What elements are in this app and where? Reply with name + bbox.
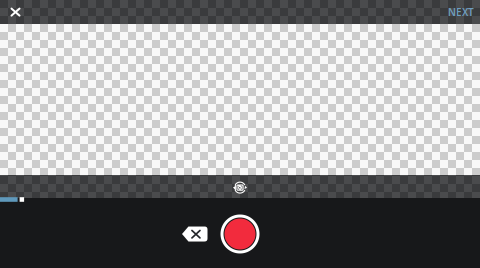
- button[interactable]: Switch camera: [229, 177, 251, 199]
- button[interactable]: Delete last clip: [176, 220, 213, 247]
- button[interactable]: NEXT: [439, 0, 480, 24]
- staticText: NEXT: [448, 5, 474, 19]
- button[interactable]: Close: [0, 0, 30, 24]
- button[interactable]: Record: [216, 210, 264, 258]
